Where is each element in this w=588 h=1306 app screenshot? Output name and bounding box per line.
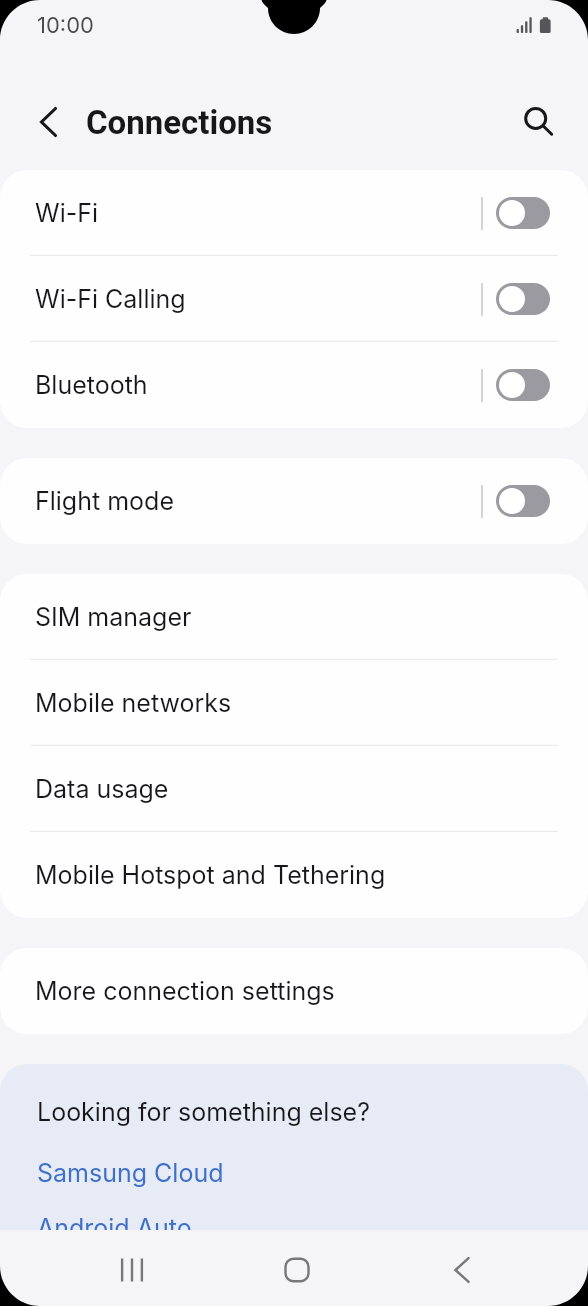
button[interactable]: Search: [512, 92, 560, 140]
button[interactable]: SIM manager: [0, 574, 588, 660]
button[interactable]: Data usage: [0, 746, 588, 832]
staticText: Mobile Hotspot and Tethering: [35, 860, 386, 890]
button[interactable]: Samsung Cloud: [37, 1158, 224, 1188]
button[interactable]: Navigate up: [22, 96, 74, 148]
staticText: Data usage: [35, 774, 169, 804]
button[interactable]: Recent apps: [106, 1244, 158, 1296]
staticText: Bluetooth: [35, 370, 481, 400]
staticText: More connection settings: [35, 976, 335, 1006]
button[interactable]: More connection settings: [0, 948, 588, 1034]
staticText: Mobile networks: [35, 688, 232, 718]
button[interactable]: Flight mode: [0, 458, 588, 544]
staticText: 10:00: [37, 12, 94, 39]
staticText: Connections: [86, 103, 273, 142]
button[interactable]: Back: [436, 1244, 488, 1296]
button[interactable]: Android Auto: [37, 1213, 192, 1243]
staticText: Flight mode: [35, 486, 481, 516]
button[interactable]: Wi-Fi: [0, 170, 588, 256]
staticText: Wi-Fi Calling: [35, 284, 481, 314]
staticText: SIM manager: [35, 602, 192, 632]
button[interactable]: Home: [271, 1244, 323, 1296]
staticText: Looking for something else?: [37, 1097, 370, 1127]
button[interactable]: Wi-Fi Calling: [0, 256, 588, 342]
button[interactable]: Mobile networks: [0, 660, 588, 746]
button[interactable]: Bluetooth: [0, 342, 588, 428]
button[interactable]: Mobile Hotspot and Tethering: [0, 832, 588, 918]
staticText: Wi-Fi: [35, 198, 481, 228]
